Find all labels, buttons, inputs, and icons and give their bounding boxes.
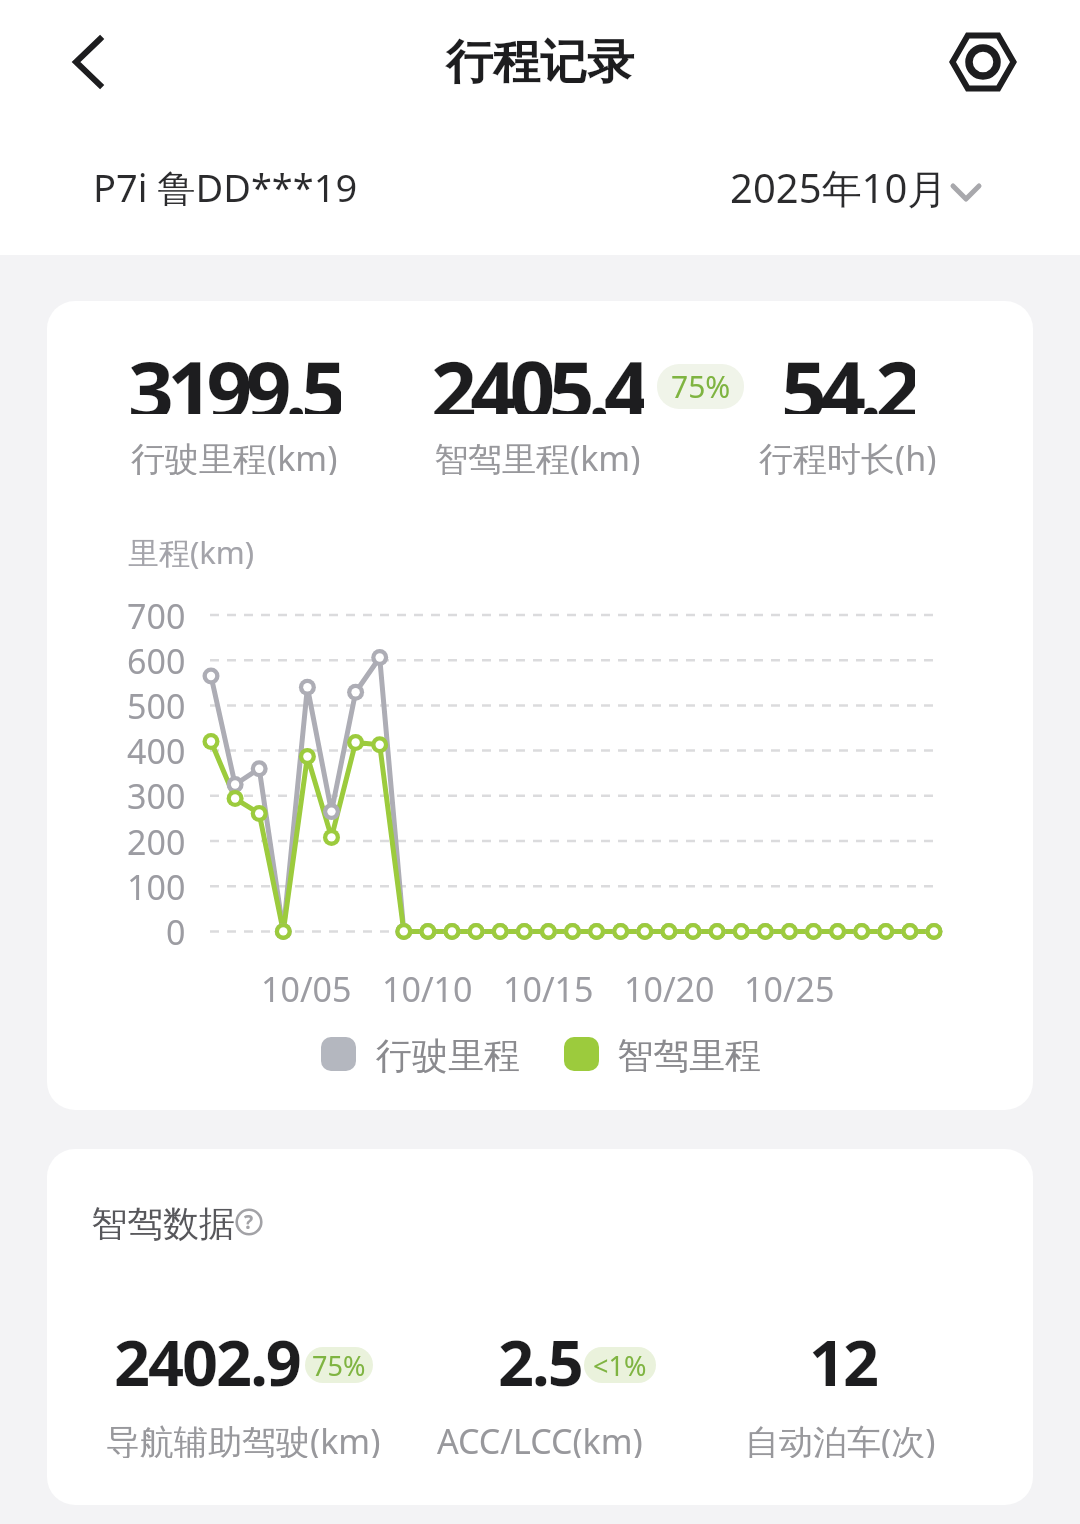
staticText: 行驶里程(km) <box>131 435 338 475</box>
staticText: 行程时长(h) <box>759 435 937 475</box>
staticText: 200 <box>127 819 186 863</box>
staticText: 700 <box>127 593 186 637</box>
staticText: 100 <box>127 864 186 908</box>
staticText: ACC/LCC(km) <box>437 1418 643 1458</box>
staticText: <1% <box>593 1347 647 1383</box>
button[interactable]: ? <box>235 1208 263 1236</box>
staticText: 3199.5 <box>128 334 341 414</box>
staticText: 12 <box>809 1319 878 1399</box>
staticText: 10/25 <box>744 966 835 1006</box>
staticText: 智驾里程(km) <box>434 435 641 475</box>
button[interactable] <box>947 26 1019 98</box>
staticText: 54.2 <box>781 334 915 414</box>
staticText: 2.5 <box>498 1319 582 1399</box>
staticText: 500 <box>127 683 186 727</box>
staticText: 行程记录 <box>446 33 634 92</box>
staticText: P7i 鲁DD***19 <box>93 161 358 213</box>
staticText: 里程(km) <box>128 531 255 571</box>
staticText: 300 <box>127 773 186 817</box>
staticText: 10/15 <box>503 966 594 1006</box>
staticText: 智驾里程 <box>617 1033 761 1075</box>
staticText: 0 <box>166 909 186 953</box>
staticText: 10/10 <box>382 966 473 1006</box>
button[interactable]: 2025年10月 <box>710 156 1000 224</box>
staticText: 75% <box>312 1347 366 1383</box>
staticText: ? <box>244 1209 254 1235</box>
staticText: 600 <box>127 638 186 682</box>
staticText: 75% <box>671 366 731 407</box>
staticText: 2405.4 <box>431 334 644 414</box>
staticText: 导航辅助驾驶(km) <box>106 1418 381 1458</box>
button[interactable] <box>56 30 120 94</box>
staticText: 自动泊车(次) <box>745 1418 936 1458</box>
staticText: 行驶里程 <box>376 1033 520 1075</box>
staticText: 智驾数据 <box>91 1201 235 1243</box>
staticText: 10/05 <box>261 966 352 1006</box>
staticText: 400 <box>127 728 186 772</box>
staticText: 2025年10月 <box>730 160 948 215</box>
staticText: 2402.9 <box>114 1319 300 1399</box>
staticText: 10/20 <box>624 966 715 1006</box>
